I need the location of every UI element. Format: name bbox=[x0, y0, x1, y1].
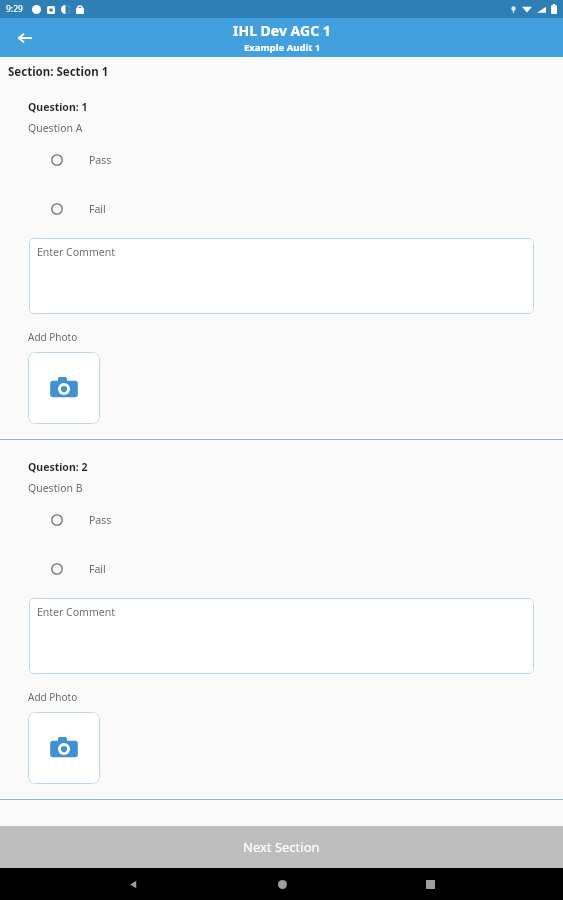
staticText: Example Audit 1 bbox=[244, 41, 321, 54]
staticText: Question: 2 bbox=[28, 460, 88, 474]
button[interactable]: Next Section bbox=[0, 826, 563, 868]
staticText: Question B bbox=[28, 481, 83, 495]
staticText: Add Photo bbox=[28, 330, 78, 344]
button[interactable]: Back bbox=[117, 868, 149, 900]
staticText: Section: Section 1 bbox=[8, 64, 109, 80]
staticText: Enter Comment bbox=[37, 605, 115, 619]
staticText: Pass bbox=[89, 153, 112, 167]
staticText: Question: 1 bbox=[28, 100, 88, 114]
staticText: 9:29 bbox=[6, 3, 23, 15]
button[interactable]: Fail bbox=[0, 198, 563, 220]
button[interactable]: Add Photo bbox=[28, 352, 100, 424]
staticText: Fail bbox=[89, 202, 106, 216]
button[interactable]: Enter Comment bbox=[29, 598, 534, 674]
button[interactable]: Back bbox=[8, 21, 42, 55]
staticText: Question A bbox=[28, 121, 83, 135]
button[interactable]: Pass bbox=[0, 149, 563, 171]
staticText: Enter Comment bbox=[37, 245, 115, 259]
staticText: Pass bbox=[89, 513, 112, 527]
button[interactable]: Home bbox=[266, 868, 298, 900]
staticText: Fail bbox=[89, 562, 106, 576]
button[interactable]: Pass bbox=[0, 509, 563, 531]
staticText: Next Section bbox=[243, 838, 320, 856]
button[interactable]: Enter Comment bbox=[29, 238, 534, 314]
button[interactable]: Fail bbox=[0, 558, 563, 580]
button[interactable]: Recents bbox=[414, 868, 446, 900]
button[interactable]: Add Photo bbox=[28, 712, 100, 784]
staticText: Add Photo bbox=[28, 690, 78, 704]
staticText: IHL Dev AGC 1 bbox=[233, 21, 331, 40]
